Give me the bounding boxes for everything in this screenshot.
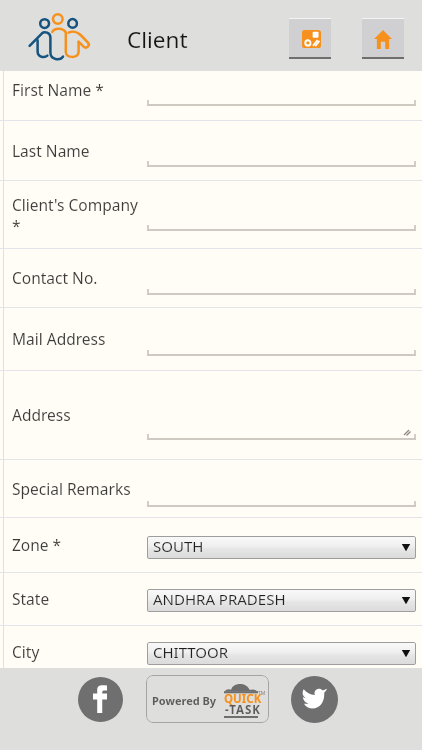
- button[interactable]: SOUTH: [147, 536, 416, 559]
- staticText: City: [12, 641, 40, 662]
- button[interactable]: [0, 573, 422, 626]
- button[interactable]: [0, 308, 422, 371]
- staticText: Powered By: [152, 693, 217, 708]
- staticText: *: [12, 215, 21, 236]
- staticText: CHITTOOR: [153, 642, 229, 662]
- button[interactable]: Powered By: [146, 675, 269, 723]
- button[interactable]: [0, 518, 422, 573]
- button[interactable]: [0, 371, 422, 460]
- button[interactable]: Home: [362, 18, 404, 59]
- staticText: TM: [258, 690, 266, 697]
- staticText: Contact No.: [12, 267, 98, 288]
- staticText: State: [12, 588, 50, 609]
- button[interactable]: Facebook: [78, 677, 123, 722]
- button[interactable]: [0, 460, 422, 518]
- staticText: Mail Address: [12, 328, 106, 349]
- button[interactable]: Dashboard: [289, 18, 331, 59]
- button[interactable]: [0, 249, 422, 308]
- staticText: Zone *: [12, 534, 62, 555]
- staticText: Address: [12, 404, 71, 425]
- staticText: First Name *: [12, 79, 104, 100]
- staticText: Special Remarks: [12, 478, 131, 499]
- button[interactable]: [0, 182, 422, 249]
- button[interactable]: [0, 121, 422, 181]
- button[interactable]: Twitter: [291, 676, 338, 723]
- staticText: Last Name: [12, 140, 90, 161]
- button[interactable]: [0, 71, 422, 121]
- button[interactable]: CHITTOOR: [147, 642, 416, 665]
- button[interactable]: ANDHRA PRADESH: [147, 589, 416, 612]
- staticText: -TASK: [225, 702, 261, 718]
- staticText: QUICK: [224, 691, 262, 707]
- button[interactable]: [0, 626, 422, 668]
- staticText: Client's Company: [12, 194, 138, 215]
- staticText: Client: [127, 24, 188, 55]
- staticText: ANDHRA PRADESH: [153, 589, 286, 609]
- staticText: SOUTH: [153, 536, 204, 556]
